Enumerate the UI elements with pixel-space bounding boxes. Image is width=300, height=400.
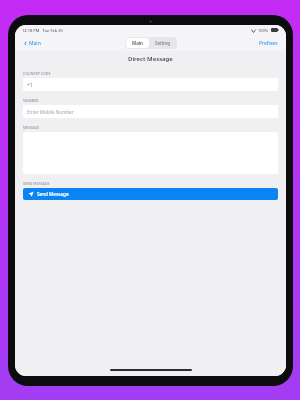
staticText: COUNTRY CODE bbox=[23, 71, 51, 76]
staticText: 100% bbox=[258, 28, 269, 33]
button[interactable]: Main bbox=[21, 39, 43, 48]
button[interactable]: Send Message bbox=[23, 188, 278, 200]
staticText: NUMBER bbox=[23, 98, 39, 103]
staticText: Setting bbox=[155, 40, 170, 46]
button[interactable]: Setting bbox=[149, 38, 176, 48]
staticText: 12:18 PM Tue Feb 25 bbox=[22, 28, 63, 33]
staticText: SEND MESSAGE bbox=[23, 181, 50, 186]
button[interactable]: Prefixes bbox=[257, 39, 280, 48]
staticText: Enter Mobile Number bbox=[27, 109, 74, 115]
button[interactable]: Main bbox=[126, 38, 149, 48]
staticText: Direct Message bbox=[128, 55, 173, 63]
staticText: MESSAGE bbox=[23, 125, 40, 130]
staticText: +1 bbox=[27, 82, 33, 88]
staticText: Main bbox=[132, 40, 143, 46]
staticText: Send Message bbox=[37, 191, 69, 197]
staticText: Prefixes bbox=[259, 40, 278, 47]
button[interactable]: +1 bbox=[23, 78, 278, 91]
staticText: Main bbox=[29, 40, 41, 47]
button[interactable]: Enter Mobile Number bbox=[23, 105, 278, 118]
